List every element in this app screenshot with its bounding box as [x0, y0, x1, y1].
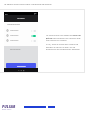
staticText: Lo último que nos queda es crear un botó…	[46, 34, 84, 41]
staticText: ▲ ▮	[34, 13, 37, 15]
staticText: Ajustes	[17, 17, 25, 20]
staticText: Ya hemos visto cómo crear la pantalla de…	[4, 3, 52, 6]
staticText: ◀ ● ■	[18, 69, 25, 71]
button[interactable]: GUARDAR	[6, 63, 36, 68]
staticText: Personalizar	[10, 48, 21, 50]
staticText: 9:41	[5, 13, 8, 15]
staticText: Mensajes	[10, 39, 19, 42]
staticText: Notificaciones	[7, 23, 20, 26]
staticText: Mensajes	[10, 29, 19, 32]
button[interactable]: Toggle setting	[31, 30, 36, 32]
staticText: Mensajes	[10, 34, 19, 37]
button[interactable]: Toggle setting	[31, 35, 36, 37]
staticText: DIGITAL AGENCY	[2, 109, 12, 111]
button[interactable]: Toggle setting	[31, 40, 36, 42]
staticText: Si no, toda la sesión del usuario se per…	[46, 43, 84, 50]
button[interactable]: Mensajes	[4, 33, 38, 38]
button[interactable]: Mensajes	[4, 38, 38, 43]
button[interactable]: Mensajes	[4, 28, 38, 33]
staticText: GUARDAR	[17, 65, 26, 67]
staticText: PULSAR	[2, 104, 16, 109]
